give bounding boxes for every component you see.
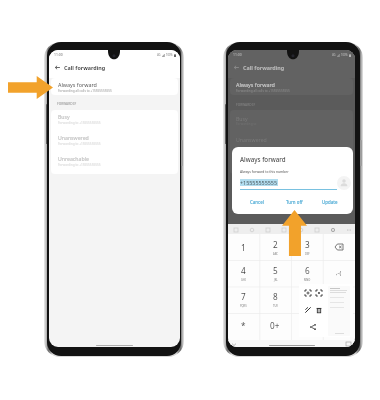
- staticText: MNO: [304, 278, 311, 282]
- staticText: 6: [305, 265, 310, 276]
- button[interactable]: *: [228, 312, 259, 338]
- staticText: 8: [273, 291, 278, 302]
- staticText: Unanswered: [58, 134, 89, 141]
- button[interactable]: 7: [228, 286, 259, 312]
- button[interactable]: Handwriting: [303, 305, 312, 314]
- button[interactable]: 2: [259, 234, 291, 260]
- button[interactable]: Keyboard tool 2: [248, 226, 255, 233]
- button[interactable]: Always forward: [51, 78, 178, 95]
- button[interactable]: 6: [291, 260, 323, 286]
- staticText: Always forward: [236, 81, 275, 88]
- staticText: Forwarding all calls to +15555555555: [58, 89, 112, 93]
- button[interactable]: 3: [291, 234, 323, 260]
- button[interactable]: Backspace: [323, 234, 355, 260]
- button[interactable]: Unreachable: [51, 154, 178, 174]
- staticText: Unanswered: [236, 136, 267, 143]
- button[interactable]: Cancel: [247, 197, 267, 207]
- staticText: Forwarding to +15555555555: [58, 121, 101, 125]
- staticText: 11:00: [54, 52, 63, 57]
- button[interactable]: Select all: [303, 288, 312, 297]
- button[interactable]: [291, 286, 323, 312]
- button[interactable]: Keyboard tool 3: [264, 226, 271, 233]
- staticText: 3: [305, 239, 310, 250]
- button[interactable]: [323, 312, 355, 338]
- staticText: 1: [241, 242, 246, 253]
- staticText: Cancel: [250, 199, 264, 205]
- staticText: Forwarding to +15555555555: [58, 142, 101, 146]
- button[interactable]: Keyboard tool 4: [280, 226, 287, 233]
- button[interactable]: 1: [228, 234, 259, 260]
- staticText: ABC: [273, 252, 278, 256]
- button[interactable]: Back: [53, 63, 62, 72]
- staticText: Call forwarding: [64, 64, 106, 71]
- staticText: +15555555555: [240, 179, 278, 186]
- staticText: Forwarding to +15555555555: [58, 163, 101, 167]
- button[interactable]: Unanswered: [51, 133, 178, 154]
- staticText: Call forwarding: [243, 64, 285, 71]
- staticText: DEF: [305, 252, 310, 256]
- button[interactable]: Update: [319, 197, 341, 207]
- staticText: 7: [241, 291, 246, 302]
- staticText: JKL: [274, 278, 278, 282]
- button[interactable]: [291, 312, 323, 338]
- staticText: Always forward to this number: [240, 169, 289, 173]
- staticText: 5: [273, 265, 278, 276]
- staticText: 4G: [332, 53, 336, 57]
- staticText: PQRS: [240, 304, 247, 308]
- staticText: *: [241, 320, 246, 331]
- staticText: 100%: [166, 53, 173, 57]
- button[interactable]: Turn off: [283, 197, 306, 207]
- button[interactable]: Select object: [314, 288, 323, 297]
- staticText: Busy: [236, 115, 248, 122]
- staticText: Always forward: [240, 155, 286, 163]
- button[interactable]: Keyboard tool 1: [232, 226, 239, 233]
- button[interactable]: Keyboard tool 6: [313, 226, 320, 233]
- button[interactable]: 8: [259, 286, 291, 312]
- staticText: 11:00: [233, 52, 242, 57]
- button[interactable]: Keyboard tool 5: [297, 226, 304, 233]
- button[interactable]: 4: [228, 260, 259, 286]
- button[interactable]: [323, 286, 355, 312]
- staticText: 4G: [157, 53, 161, 57]
- button[interactable]: Delete: [314, 305, 323, 314]
- staticText: Busy: [58, 113, 70, 120]
- staticText: 100%: [341, 53, 348, 57]
- button[interactable]: Back: [232, 63, 241, 72]
- staticText: FORWARD IF: [236, 103, 256, 107]
- button[interactable]: ,-(: [323, 260, 355, 286]
- staticText: TUV: [273, 304, 278, 308]
- button[interactable]: Keyboard tool 8: [345, 226, 352, 233]
- staticText: Update: [322, 199, 338, 205]
- staticText: 2: [273, 239, 278, 250]
- staticText: GHI: [241, 278, 246, 282]
- staticText: 4: [241, 265, 246, 276]
- button[interactable]: 0+: [259, 312, 291, 338]
- staticText: ,-(: [336, 269, 342, 277]
- button[interactable]: 5: [259, 260, 291, 286]
- staticText: Always forward: [58, 81, 97, 88]
- staticText: Forwarding all calls to +15555555555: [236, 89, 290, 93]
- button[interactable]: Busy: [51, 112, 178, 133]
- staticText: Unreachable: [58, 155, 89, 162]
- button[interactable]: Keyboard tool 7: [329, 226, 336, 233]
- other: Backspace: [335, 244, 343, 250]
- staticText: FORWARD IF: [57, 102, 77, 106]
- staticText: 0+: [270, 320, 280, 331]
- button[interactable]: Share: [308, 322, 317, 331]
- button[interactable]: Contacts: [337, 176, 351, 190]
- staticText: Turn off: [286, 199, 303, 205]
